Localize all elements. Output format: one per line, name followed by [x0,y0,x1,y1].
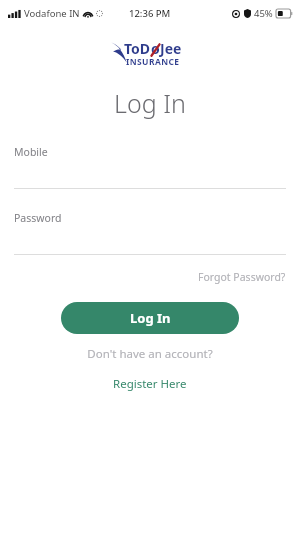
staticText: Forgot Password? [198,270,286,284]
button[interactable]: Password [0,211,300,255]
button[interactable]: Forgot Password? [194,267,290,287]
staticText: Log In [130,309,171,327]
staticText: 12:36 PM [129,7,171,20]
staticText: 45% [254,7,273,20]
staticText: Jee [160,39,182,58]
staticText: ToD [124,39,151,58]
staticText: Password [14,211,62,225]
staticText: Vodafone IN [24,7,80,20]
staticText: o [151,39,160,58]
staticText: INSURANCE [126,56,180,68]
staticText: Log In [0,86,300,120]
button[interactable]: Mobile [0,145,300,189]
button[interactable]: Register Here [105,373,195,395]
staticText: Register Here [113,376,187,392]
staticText: Don't have an account? [0,346,300,362]
staticText: Mobile [14,145,48,159]
button[interactable]: Log In [61,302,239,334]
